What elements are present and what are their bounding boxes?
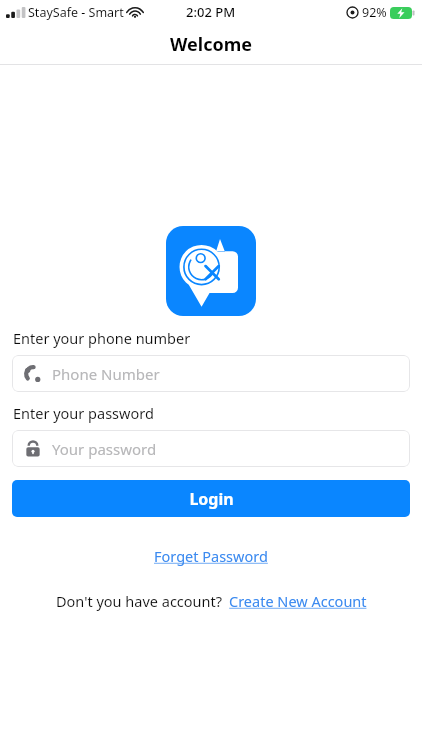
staticText: Enter your phone number — [13, 328, 191, 348]
staticText: Don't you have account? — [56, 591, 223, 611]
button[interactable]: Create New Account — [229, 591, 367, 611]
staticText: Forget Password — [154, 546, 268, 566]
button[interactable]: Login — [12, 480, 410, 517]
staticText: 92% — [362, 4, 387, 21]
staticText: Phone Number — [52, 364, 160, 384]
staticText: Welcome — [170, 32, 252, 57]
staticText: 2:02 PM — [186, 3, 236, 21]
staticText: Create New Account — [229, 591, 367, 611]
button[interactable]: Forget Password — [148, 543, 274, 569]
button[interactable]: Phone Number — [12, 355, 410, 392]
button[interactable]: Your password — [12, 430, 410, 467]
staticText: Enter your password — [13, 403, 154, 423]
staticText: StaySafe - Smart — [28, 4, 124, 21]
staticText: Login — [189, 488, 234, 510]
staticText: Your password — [52, 439, 157, 459]
